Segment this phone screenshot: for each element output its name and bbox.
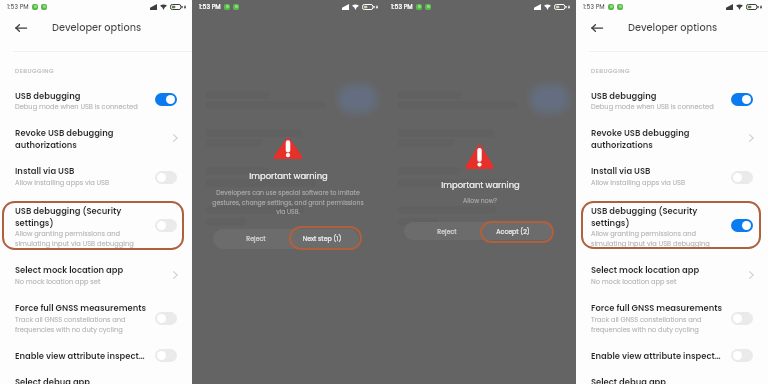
button[interactable] bbox=[0, 373, 192, 384]
staticText: USB debugging bbox=[591, 90, 731, 102]
staticText: 1:53 PM bbox=[391, 3, 413, 11]
button[interactable] bbox=[576, 299, 768, 338]
staticText: Force full GNSS measurements bbox=[591, 302, 731, 314]
button[interactable] bbox=[0, 346, 192, 364]
button[interactable]: Switch off bbox=[155, 349, 177, 362]
staticText: Install via USB bbox=[15, 165, 155, 177]
staticText: Select mock location app bbox=[15, 264, 155, 276]
button[interactable]: Switch off bbox=[731, 349, 753, 362]
staticText: Developers can use special software to i… bbox=[212, 189, 364, 216]
staticText: 1:53 PM bbox=[199, 3, 221, 11]
staticText: Important warning bbox=[249, 170, 328, 182]
button[interactable]: Open bbox=[746, 269, 758, 281]
staticText: USB debugging bbox=[15, 90, 155, 102]
staticText: Allow installing apps via USB bbox=[15, 178, 160, 187]
staticText: Accept (2) bbox=[481, 227, 545, 236]
staticText: Select debug app bbox=[591, 376, 731, 384]
button[interactable]: Switch off bbox=[731, 312, 753, 325]
staticText: Important warning bbox=[441, 179, 520, 191]
button[interactable]: Switch off bbox=[155, 312, 177, 325]
staticText: Next step (1) bbox=[290, 234, 354, 243]
staticText: Enable view attribute inspect… bbox=[15, 350, 155, 362]
staticText: Track all GNSS constellations and freque… bbox=[591, 315, 736, 334]
button[interactable]: Switch on bbox=[155, 93, 177, 106]
button[interactable]: Open bbox=[170, 269, 182, 281]
button[interactable] bbox=[576, 162, 768, 191]
button[interactable]: Switch on bbox=[731, 219, 753, 232]
button[interactable]: Open bbox=[746, 132, 758, 144]
button[interactable] bbox=[478, 222, 552, 240]
button[interactable]: Back bbox=[15, 22, 27, 34]
button[interactable] bbox=[0, 87, 192, 116]
staticText: Debug mode when USB is connected bbox=[15, 102, 160, 111]
staticText: Allow granting permissions and simulatin… bbox=[15, 229, 160, 248]
button[interactable] bbox=[0, 201, 192, 251]
staticText: Select debug app bbox=[15, 376, 155, 384]
button[interactable] bbox=[576, 373, 768, 384]
button[interactable]: Switch on bbox=[731, 93, 753, 106]
button[interactable] bbox=[576, 261, 768, 290]
staticText: Allow installing apps via USB bbox=[591, 178, 736, 187]
staticText: 1:53 PM bbox=[7, 3, 29, 11]
button[interactable]: Switch off bbox=[155, 219, 177, 232]
button[interactable] bbox=[213, 229, 286, 249]
button[interactable] bbox=[286, 229, 359, 249]
staticText: DEBUGGING bbox=[15, 67, 55, 75]
staticText: Select mock location app bbox=[591, 264, 731, 276]
staticText: Developer options bbox=[52, 21, 142, 35]
staticText: DEBUGGING bbox=[591, 67, 631, 75]
button[interactable]: Switch off bbox=[731, 171, 753, 184]
staticText: Developer options bbox=[628, 21, 718, 35]
staticText: Allow granting permissions and simulatin… bbox=[591, 229, 736, 248]
staticText: USB debugging (Security settings) bbox=[15, 205, 155, 228]
staticText: Allow now? bbox=[463, 197, 497, 206]
button[interactable] bbox=[0, 162, 192, 191]
staticText: No mock location app set bbox=[591, 277, 736, 286]
button[interactable] bbox=[576, 87, 768, 116]
staticText: 1:53 PM bbox=[583, 3, 605, 11]
staticText: Debug mode when USB is connected bbox=[591, 102, 736, 111]
button[interactable] bbox=[576, 201, 768, 251]
button[interactable] bbox=[576, 124, 768, 153]
staticText: Revoke USB debugging authorizations bbox=[15, 127, 155, 150]
staticText: Reject bbox=[427, 227, 467, 236]
staticText: No mock location app set bbox=[15, 277, 160, 286]
staticText: Force full GNSS measurements bbox=[15, 302, 155, 314]
staticText: Enable view attribute inspect… bbox=[591, 350, 731, 362]
staticText: Track all GNSS constellations and freque… bbox=[15, 315, 160, 334]
button[interactable] bbox=[0, 299, 192, 338]
staticText: Revoke USB debugging authorizations bbox=[591, 127, 731, 150]
button[interactable]: Open bbox=[170, 132, 182, 144]
button[interactable] bbox=[0, 261, 192, 290]
button[interactable]: Switch off bbox=[155, 171, 177, 184]
button[interactable] bbox=[404, 222, 478, 240]
staticText: Reject bbox=[236, 234, 276, 243]
button[interactable] bbox=[576, 346, 768, 364]
button[interactable] bbox=[0, 124, 192, 153]
staticText: Install via USB bbox=[591, 165, 731, 177]
button[interactable]: Back bbox=[591, 22, 603, 34]
staticText: USB debugging (Security settings) bbox=[591, 205, 731, 228]
